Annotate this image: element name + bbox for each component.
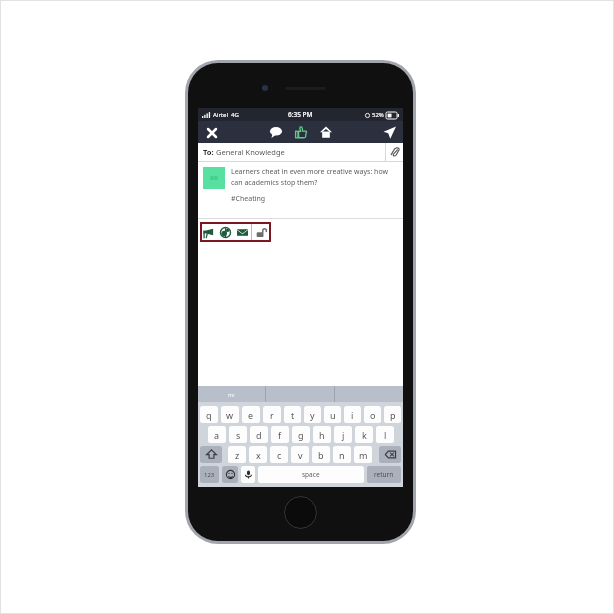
staticText: i [351,409,354,421]
button[interactable]: s [229,426,247,443]
button[interactable]: l [376,426,394,443]
button[interactable]: n [333,446,351,463]
staticText: h [319,429,325,441]
button[interactable]: Backspace [379,446,401,463]
button[interactable]: Announce [200,222,217,242]
staticText: 4G [231,111,239,119]
staticText: space [302,470,320,479]
staticText: k [362,429,367,441]
button[interactable]: space [258,466,364,483]
staticText: f [278,429,282,441]
staticText: w [226,409,234,421]
button[interactable]: w [221,406,239,423]
button[interactable]: a [208,426,226,443]
staticText: v [298,449,303,461]
button[interactable]: q [200,406,218,423]
staticText: o [370,409,376,421]
staticText: To: [203,147,216,157]
staticText: d [256,429,262,441]
staticText: z [235,449,240,461]
staticText: p [390,409,396,421]
staticText: Airtel [213,111,228,119]
button[interactable]: x [249,446,267,463]
button[interactable]: Attach [386,143,403,161]
staticText: BB [210,174,218,182]
button[interactable]: return [367,466,401,483]
staticText: Learners cheat in even more creative way… [231,167,398,187]
staticText: b [318,449,324,461]
button[interactable]: c [270,446,288,463]
button[interactable]: h [313,426,331,443]
button[interactable]: Unlocked [252,222,271,242]
staticText: s [236,429,241,441]
button[interactable]: Like [293,124,309,140]
staticText: m [359,449,368,461]
button[interactable]: r [263,406,281,423]
button[interactable]: To: [203,143,385,161]
staticText: 123 [204,471,215,479]
staticText: y [310,409,315,421]
staticText: 52% [372,111,384,119]
button[interactable]: 123 [200,466,219,483]
staticText: a [214,429,220,441]
button[interactable]: e [242,406,260,423]
button[interactable]: nv [198,386,265,402]
staticText: r [270,409,274,421]
button[interactable]: v [291,446,309,463]
staticText: q [206,409,212,421]
staticText: e [248,409,254,421]
button[interactable]: Home [318,124,334,140]
staticText: General Knowledge [216,147,285,157]
button[interactable]: i [344,406,361,423]
staticText: j [342,429,345,441]
staticText: return [374,470,394,479]
staticText: c [277,449,282,461]
button[interactable]: u [324,406,341,423]
button[interactable]: Send [381,124,398,141]
staticText: t [291,409,295,421]
staticText: nv [228,391,235,398]
staticText: l [384,429,387,441]
staticText: g [298,429,304,441]
button[interactable]: b [312,446,330,463]
button[interactable]: f [271,426,289,443]
staticText: 6:35 PM [288,110,313,119]
button[interactable]: y [304,406,321,423]
button[interactable]: g [292,426,310,443]
button[interactable]: p [384,406,401,423]
button[interactable]: Emoji [222,466,238,483]
button[interactable]: d [250,426,268,443]
button[interactable]: Close [203,124,220,141]
button[interactable]: j [334,426,352,443]
button[interactable]: Comments [268,124,284,140]
button[interactable]: Public [217,222,234,242]
button[interactable]: k [355,426,373,443]
button[interactable]: z [228,446,246,463]
button[interactable]: o [364,406,381,423]
staticText: u [330,409,336,421]
staticText: #Cheating [231,194,266,204]
staticText: x [256,449,261,461]
button[interactable]: t [284,406,301,423]
button[interactable]: Shift [200,446,222,463]
button[interactable]: m [354,446,372,463]
button[interactable]: Dictate [241,466,255,483]
button[interactable]: Email [234,222,251,242]
staticText: n [339,449,345,461]
